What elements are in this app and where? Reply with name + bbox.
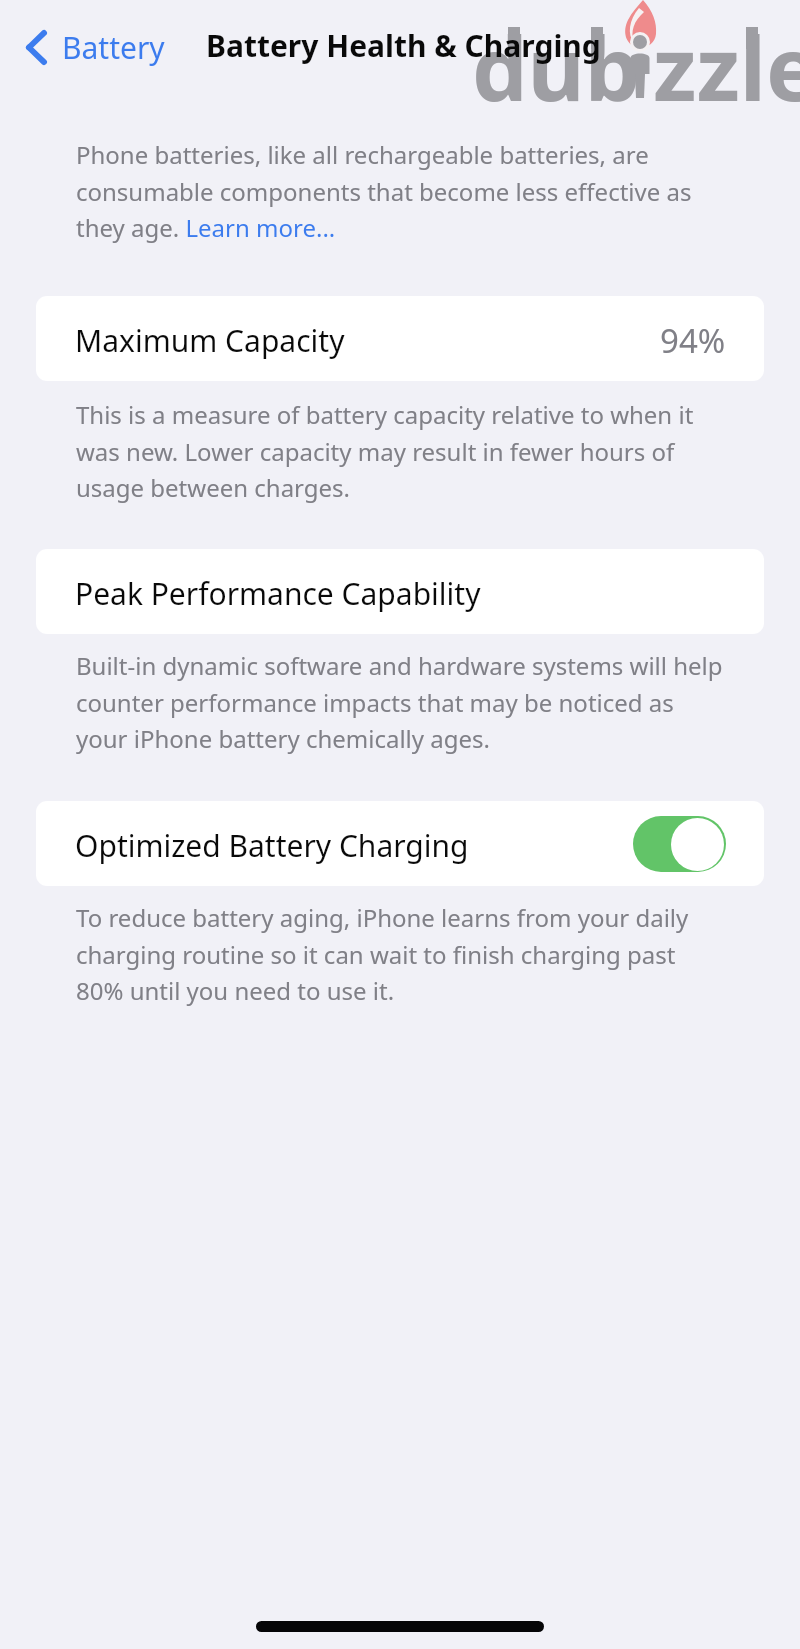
staticText: Optimized Battery Charging xyxy=(75,825,469,866)
staticText: Battery xyxy=(62,27,165,68)
button[interactable]: Battery xyxy=(18,19,173,76)
staticText: Phone batteries, like all rechargeable b… xyxy=(76,138,728,244)
staticText: 94% xyxy=(660,318,726,363)
staticText: Battery Health & Charging xyxy=(206,25,601,66)
button[interactable]: Optimized Battery Charging toggle xyxy=(633,816,726,872)
button[interactable]: Maximum Capacity xyxy=(36,296,764,381)
staticText: Built-in dynamic software and hardware s… xyxy=(76,649,728,755)
staticText: To reduce battery aging, iPhone learns f… xyxy=(76,901,728,1007)
staticText: dub xyxy=(472,7,641,127)
staticText: Peak Performance Capability xyxy=(75,573,481,614)
staticText: zzle xyxy=(653,7,800,127)
staticText: Maximum Capacity xyxy=(75,320,345,361)
button[interactable]: Peak Performance Capability xyxy=(36,549,764,634)
staticText: This is a measure of battery capacity re… xyxy=(76,398,728,504)
